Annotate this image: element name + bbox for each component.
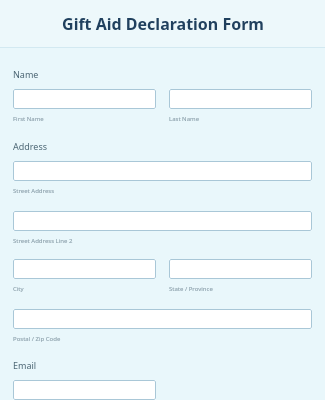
button[interactable]: State / Province: [169, 259, 312, 279]
staticText: State / Province: [169, 285, 213, 293]
button[interactable]: Last Name: [169, 89, 312, 109]
button[interactable]: Street Address: [13, 161, 312, 181]
staticText: Email: [13, 359, 37, 371]
button[interactable]: Email: [13, 380, 156, 400]
button[interactable]: City: [13, 259, 156, 279]
staticText: Address: [13, 140, 48, 152]
staticText: Gift Aid Declaration Form: [62, 13, 264, 35]
staticText: Street Address: [13, 187, 55, 195]
button[interactable]: Street Address Line 2: [13, 211, 312, 231]
button[interactable]: Postal / Zip Code: [13, 309, 312, 329]
staticText: Last Name: [169, 115, 200, 123]
staticText: First Name: [13, 115, 44, 123]
staticText: Street Address Line 2: [13, 237, 73, 245]
staticText: Postal / Zip Code: [13, 335, 61, 343]
staticText: Name: [13, 68, 39, 80]
staticText: City: [13, 285, 24, 293]
button[interactable]: First Name: [13, 89, 156, 109]
